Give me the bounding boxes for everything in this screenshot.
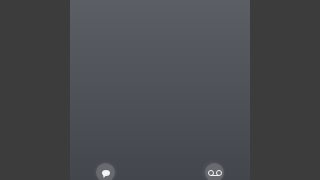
button[interactable]: Message — [96, 163, 115, 180]
button[interactable]: Voicemail — [205, 163, 224, 180]
